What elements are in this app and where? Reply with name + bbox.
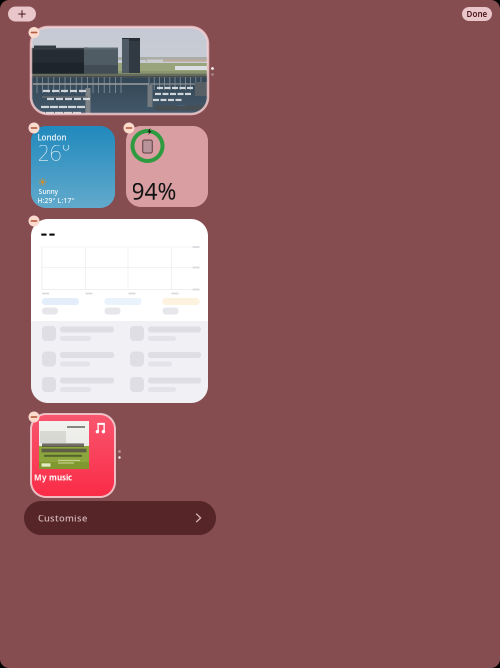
staticText: London [37,132,66,143]
staticText: My music [34,472,72,483]
button[interactable]: Photos widget [31,27,208,114]
button[interactable]: Weather widget [31,126,115,208]
button[interactable]: Add widget [8,6,36,21]
button[interactable]: Calendar widget [31,219,208,403]
button[interactable]: Music widget [31,414,115,497]
button[interactable]: Battery widget [126,126,208,207]
staticText: Done [466,9,487,19]
staticText: H:29° L:17° [37,196,74,205]
staticText: Customise [38,512,87,524]
button[interactable]: Customise [24,501,216,535]
staticText: 94% [131,176,176,206]
button[interactable]: Done [462,7,492,21]
staticText: Sunny [38,187,58,196]
staticText: 26° [37,138,70,167]
